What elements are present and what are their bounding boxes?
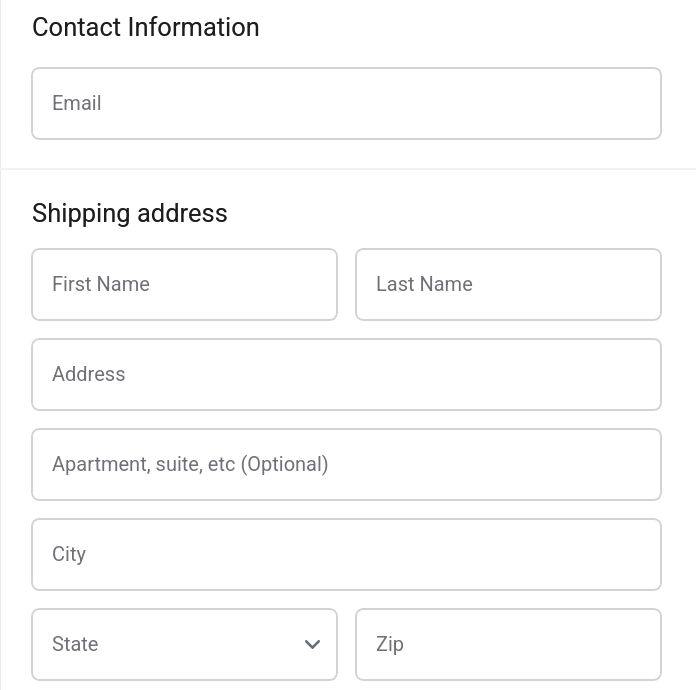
staticText: State [52,632,99,655]
staticText: Zip [376,632,405,655]
button[interactable]: Last Name [355,248,662,321]
staticText: Last Name [376,272,473,295]
button[interactable]: Email [31,67,662,140]
button[interactable]: Zip [355,608,662,681]
staticText: Shipping address [32,198,228,228]
staticText: First Name [52,272,150,295]
staticText: Email [52,91,102,114]
button[interactable]: State [31,608,338,681]
staticText: Contact Information [32,12,260,42]
staticText: Contact Information [32,12,260,42]
button[interactable]: First Name [31,248,338,321]
button[interactable]: Apartment, suite, etc (Optional) [31,428,662,501]
staticText: City [52,542,86,565]
staticText: Shipping address [32,198,228,228]
staticText: Address [52,362,126,385]
button[interactable]: City [31,518,662,591]
button[interactable]: Address [31,338,662,411]
staticText: Apartment, suite, etc (Optional) [52,452,329,475]
other: Choose state [305,640,320,649]
